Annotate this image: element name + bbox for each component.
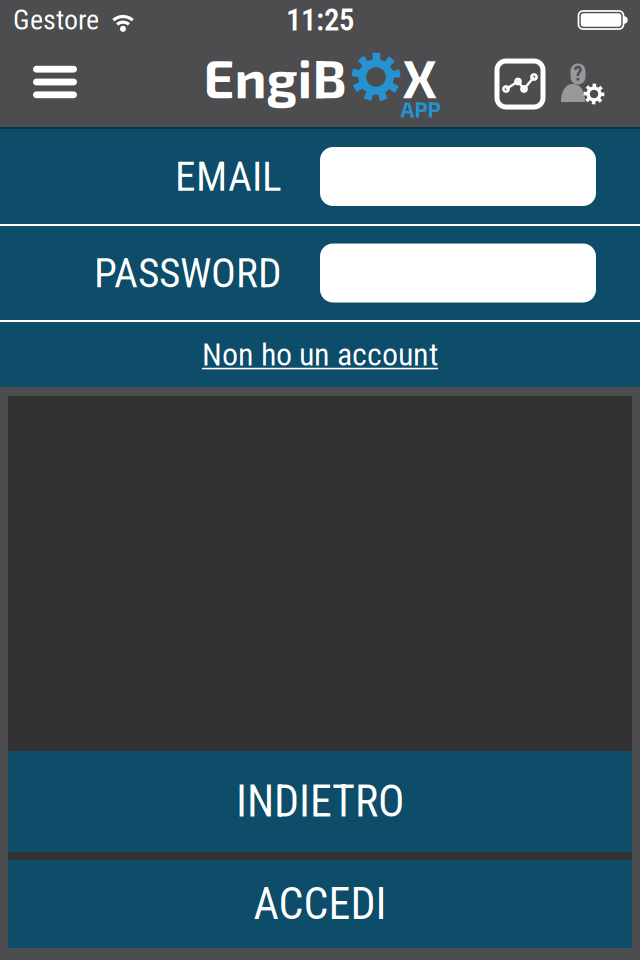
staticText: Gestore <box>13 4 99 36</box>
staticText: EMAIL <box>175 153 282 200</box>
button[interactable]: ACCEDI <box>8 860 632 948</box>
staticText: ? <box>573 63 582 85</box>
staticText: ACCEDI <box>253 879 386 929</box>
button[interactable]: Non ho un account <box>0 322 640 387</box>
staticText: PASSWORD <box>94 249 282 297</box>
staticText: APP <box>400 96 440 122</box>
staticText: X <box>402 45 436 109</box>
button[interactable]: Charts <box>492 56 548 112</box>
staticText: 11:25 <box>286 2 354 37</box>
button[interactable]: Account settings <box>558 60 618 110</box>
staticText: INDIETRO <box>236 776 404 827</box>
staticText: EngiB <box>203 45 346 109</box>
button[interactable]: INDIETRO <box>8 751 632 852</box>
staticText: Non ho un account <box>202 336 438 373</box>
button[interactable]: Menu <box>15 52 95 112</box>
